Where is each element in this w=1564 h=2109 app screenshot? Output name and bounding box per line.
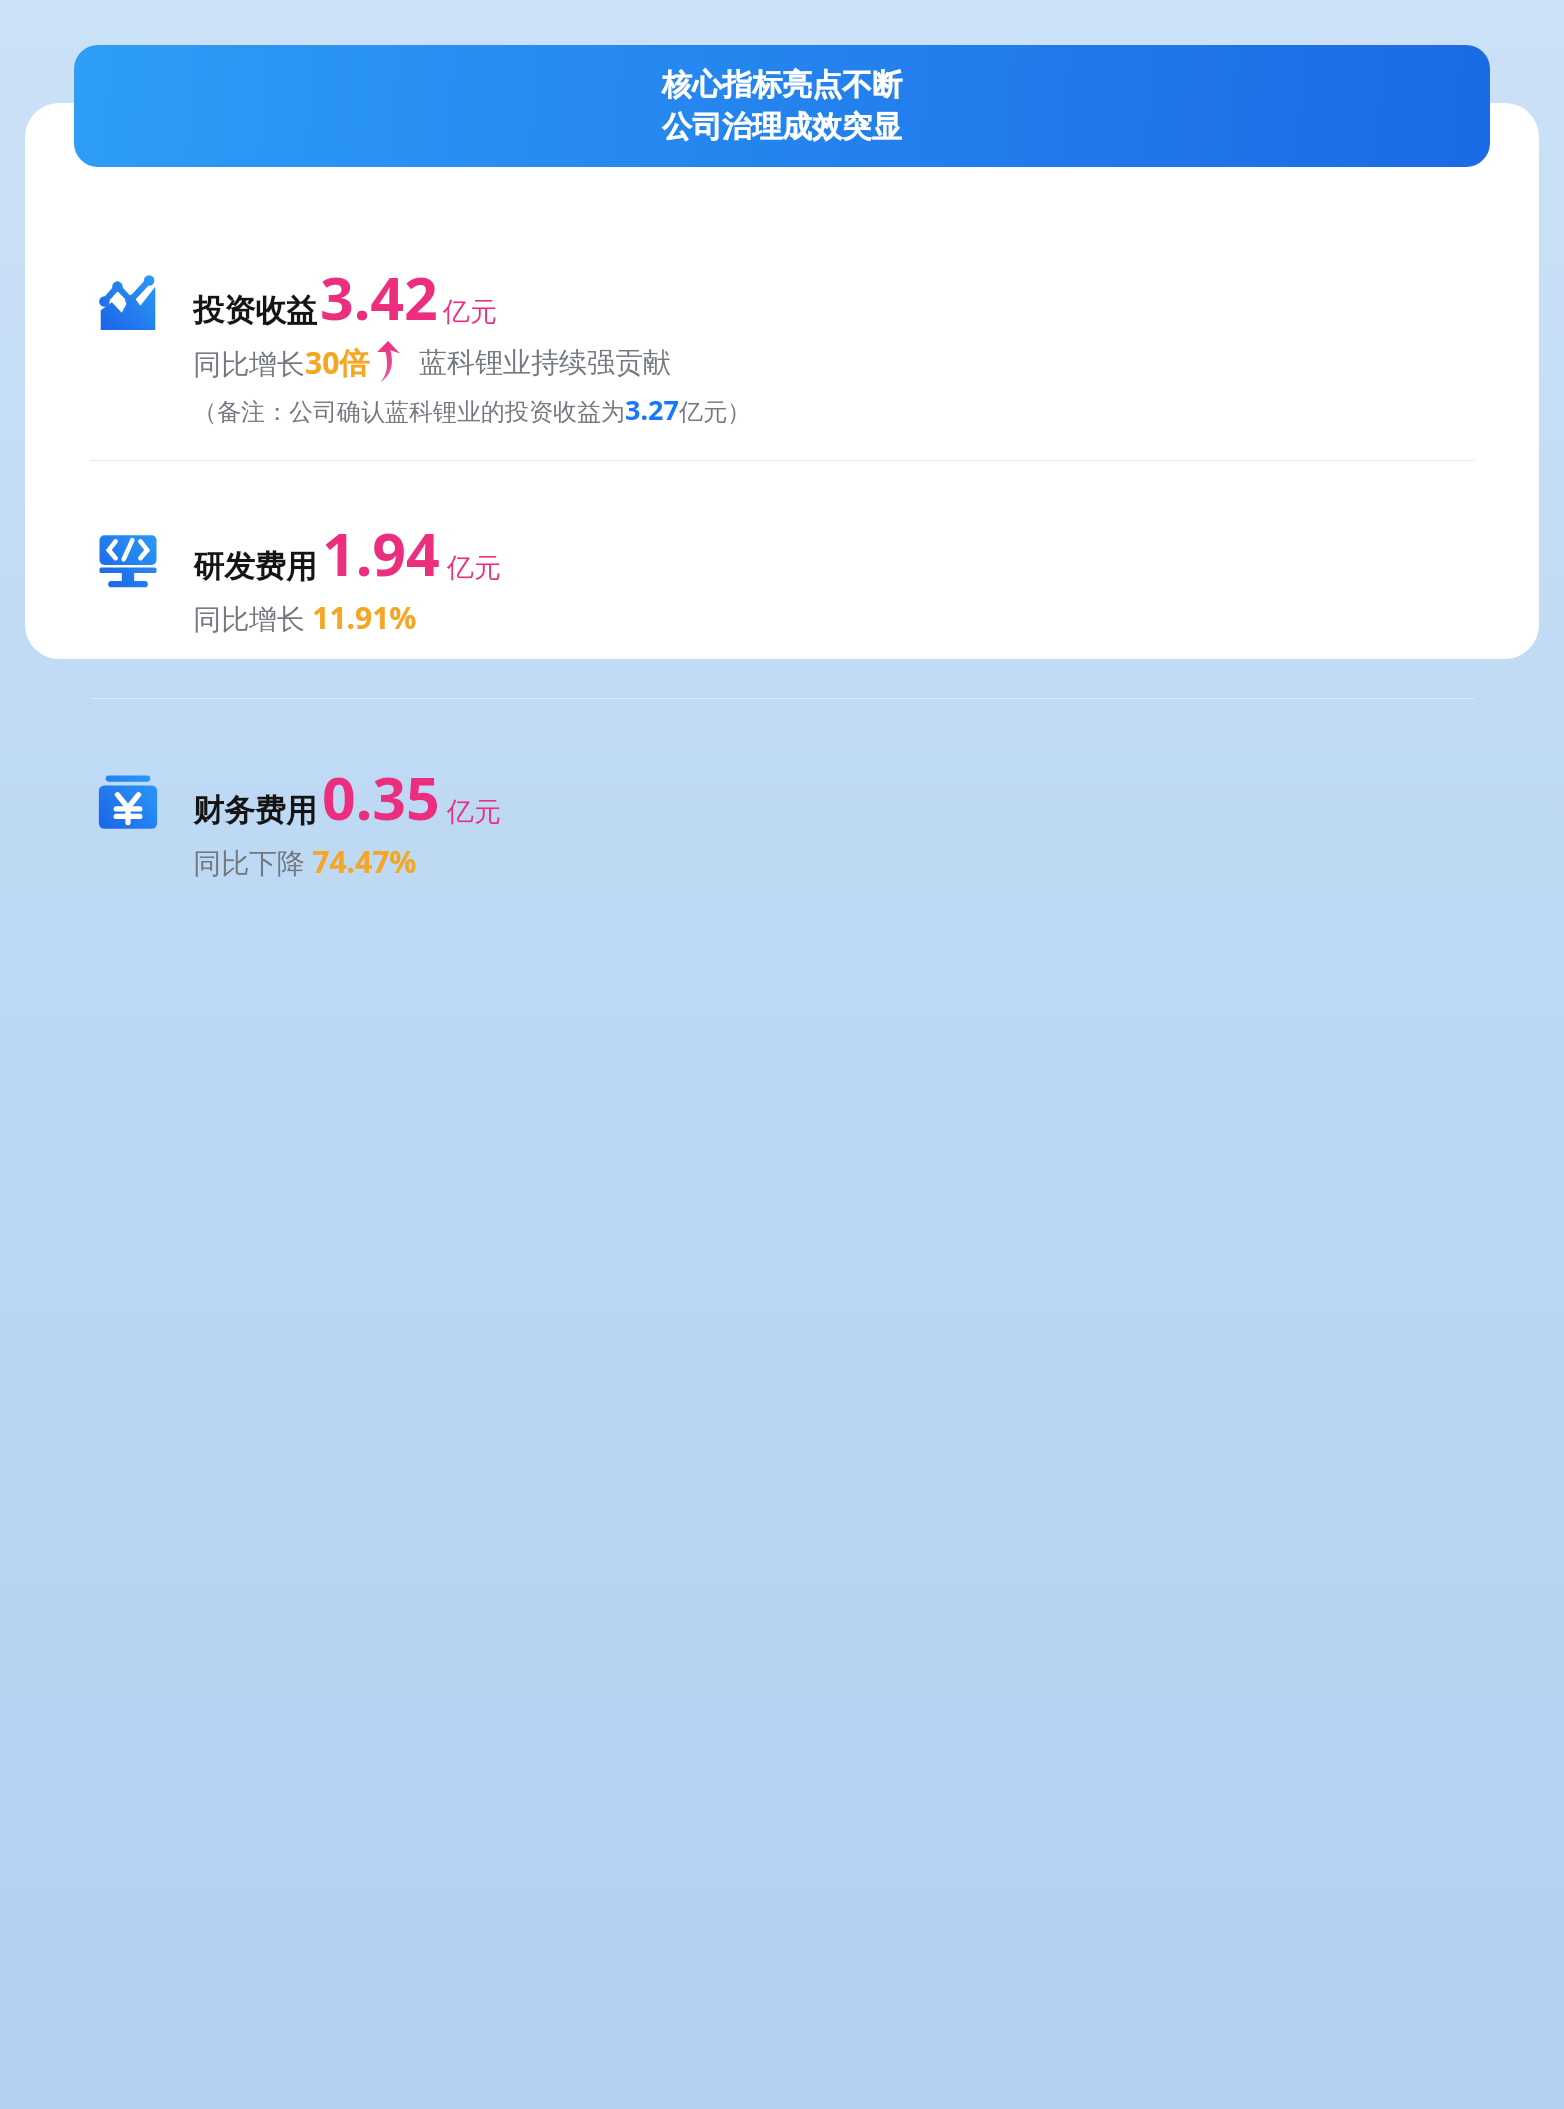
- staticText: 亿元: [447, 551, 501, 585]
- staticText: 蓝科锂业持续强贡献: [419, 345, 671, 380]
- staticText: 核心指标亮点不断: [662, 66, 902, 104]
- staticText: 1.94: [322, 513, 440, 593]
- staticText: （备注：公司确认蓝科锂业的投资收益为3.27亿元）: [193, 391, 751, 428]
- staticText: 同比下降 74.47%: [193, 841, 417, 882]
- staticText: 投资收益: [193, 291, 317, 330]
- button[interactable]: Finance expense: [97, 757, 1534, 882]
- staticText: 研发费用: [193, 547, 317, 586]
- staticText: 公司治理成效突显: [662, 108, 902, 146]
- staticText: 0.35: [322, 757, 440, 837]
- button[interactable]: 核心指标亮点不断: [74, 45, 1490, 167]
- button[interactable]: R and D expense: [97, 513, 1534, 638]
- other: Finance expense: [97, 773, 159, 835]
- staticText: 财务费用: [193, 791, 317, 830]
- other: Investment income: [97, 273, 159, 335]
- staticText: 同比增长30倍: [193, 342, 370, 383]
- other: R and D expense: [97, 529, 159, 591]
- staticText: 亿元: [443, 295, 497, 329]
- staticText: 同比增长 11.91%: [193, 597, 417, 638]
- staticText: 亿元: [447, 795, 501, 829]
- staticText: 3.42: [320, 257, 438, 337]
- button[interactable]: Investment income: [97, 257, 1534, 428]
